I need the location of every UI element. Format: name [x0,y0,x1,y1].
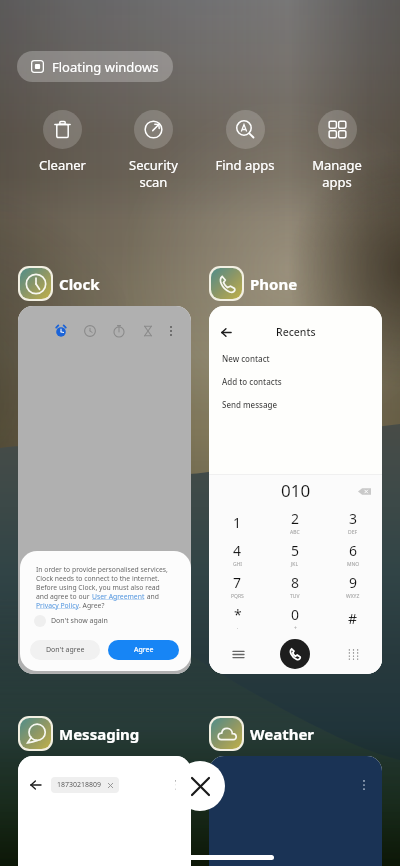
staticText: 7 [233,573,242,592]
button[interactable]: Backspace [356,483,372,499]
button[interactable]: 6 [324,538,382,570]
staticText: 4 [233,541,242,560]
staticText: New contact [222,353,270,364]
staticText: Don't show again [51,616,108,626]
staticText: . Agree? [79,601,105,610]
button[interactable]: 0 [266,602,324,634]
button[interactable]: 1 [209,506,266,538]
staticText: 1 [233,513,242,532]
staticText: In order to provide personalised service… [36,565,168,574]
button[interactable]: 5 [266,538,324,570]
staticText: · [237,625,239,632]
staticText: Add to contacts [222,376,282,387]
button[interactable]: Tab [18,306,191,674]
button[interactable]: Close [175,761,225,811]
staticText: Find apps [215,156,275,174]
button[interactable]: Dialpad [342,643,364,665]
staticText: 010 [281,479,311,502]
button[interactable]: Tab [159,319,183,343]
button[interactable]: Weather [209,716,315,751]
staticText: Don't agree [46,645,85,655]
staticText: PQRS [231,593,244,600]
button[interactable]: 4 [209,538,266,570]
staticText: Weather [250,724,315,744]
staticText: Clock [59,274,100,294]
staticText: JKL [291,561,299,568]
button[interactable]: Call [280,639,310,669]
staticText: Manage apps [312,156,362,191]
staticText: Clock needs to connect to the internet. [36,574,160,583]
staticText: Send message [222,399,278,410]
button[interactable]: Back [27,776,45,794]
staticText: 2 [291,509,300,528]
button[interactable]: Floating windows [17,51,173,82]
button[interactable]: 2 [266,506,324,538]
button[interactable]: Back [18,756,191,866]
button[interactable]: 9 [324,570,382,602]
staticText: 6 [349,541,358,560]
button[interactable]: Don't show again [34,615,108,627]
staticText: DEF [348,529,358,536]
button[interactable]: Cleaner [17,110,108,174]
button[interactable]: Tab [78,319,102,343]
staticText: and agree to our [36,592,92,601]
staticText: # [348,609,358,628]
staticText: ABC [290,529,300,536]
button[interactable]: Tab [107,319,131,343]
button[interactable]: * [209,602,266,634]
button[interactable]: 7 [209,570,266,602]
staticText: Privacy Policy [36,601,79,610]
button[interactable]: Manage apps [291,110,383,191]
staticText: 18730218809 [57,780,102,790]
button[interactable]: Back [214,320,238,344]
button[interactable]: # [324,602,382,634]
staticText: TUV [290,593,300,600]
staticText: 8 [291,573,300,592]
staticText: Cleaner [39,156,86,174]
button[interactable]: Back [209,306,382,674]
staticText: * [234,605,242,624]
staticText: Messaging [59,724,140,744]
staticText: GHI [233,561,243,568]
button[interactable]: Find apps [199,110,291,174]
button[interactable]: Send message [209,393,382,416]
button[interactable]: Tab [49,319,73,343]
button[interactable]: 3 [324,506,382,538]
staticText: and [145,592,159,601]
staticText: Agree [134,645,154,655]
staticText: 3 [349,509,358,528]
button[interactable]: Menu [227,643,249,665]
button[interactable]: Don't agree [30,640,100,660]
staticText: Security scan [129,156,178,191]
staticText: 9 [349,573,358,592]
button[interactable]: Messaging [18,716,140,751]
staticText: MNO [347,561,360,568]
button[interactable]: Clock [18,266,100,301]
staticText: WXYZ [346,593,360,600]
button[interactable]: Add to contacts [209,370,382,393]
staticText: 5 [291,541,300,560]
button[interactable] [209,756,382,866]
button[interactable]: 8 [266,570,324,602]
button[interactable]: Security scan [108,110,199,191]
button[interactable]: New contact [209,347,382,370]
staticText: + [294,625,297,632]
staticText: Phone [250,274,298,294]
button[interactable]: Phone [209,266,298,301]
staticText: User Agreement [92,592,145,601]
button[interactable]: Agree [108,640,179,660]
staticText: Floating windows [52,58,159,76]
staticText: Before using Clock, you must also read [36,583,160,592]
button[interactable]: Tab [136,319,160,343]
staticText: 0 [291,605,300,624]
staticText: Recents [276,325,316,339]
